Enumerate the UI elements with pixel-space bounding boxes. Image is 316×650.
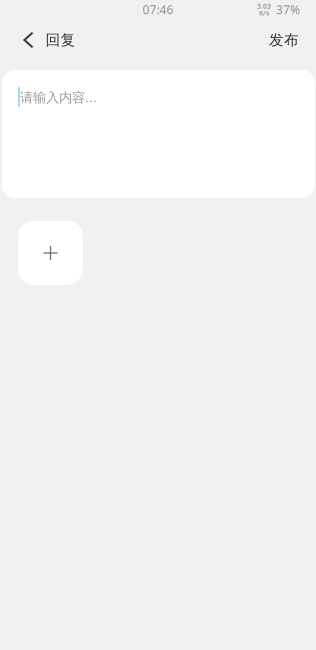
button[interactable]: 请输入内容... <box>2 70 315 198</box>
staticText: 回复 <box>45 31 75 49</box>
button[interactable]: 回复 <box>0 19 91 61</box>
staticText: 请输入内容... <box>20 88 97 106</box>
staticText: 37% <box>276 1 300 17</box>
button[interactable]: 发布 <box>251 19 316 61</box>
staticText: 3.03 <box>257 2 271 10</box>
staticText: 发布 <box>269 31 299 49</box>
button[interactable]: Add attachment <box>18 221 83 285</box>
staticText: K/s <box>259 8 269 17</box>
staticText: 07:46 <box>142 1 173 17</box>
